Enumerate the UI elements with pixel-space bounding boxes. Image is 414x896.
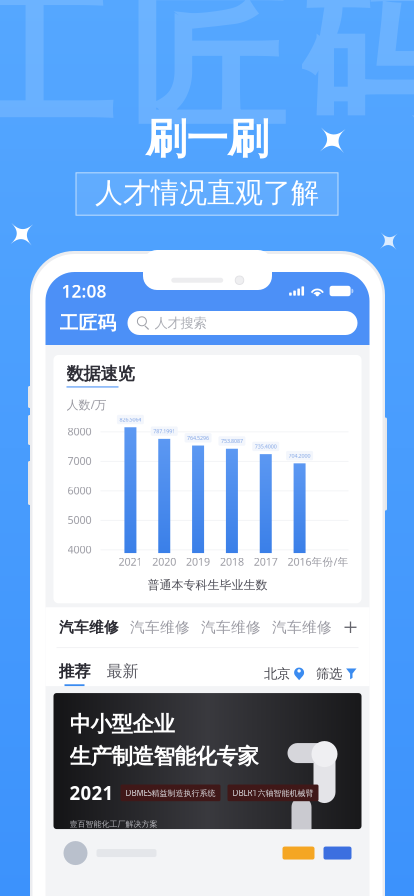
button[interactable]: 北京	[264, 666, 304, 686]
staticText: 匠	[128, 0, 285, 160]
staticText: 787.1991	[153, 428, 175, 435]
staticText: 753.8087	[221, 437, 243, 444]
staticText: 普通本专科生毕业生数	[147, 577, 267, 592]
staticText: 码	[299, 0, 414, 160]
staticText: 7000	[67, 454, 91, 468]
staticText: 工匠码	[59, 311, 116, 334]
staticText: 735.4000	[255, 443, 277, 450]
staticText: 2019	[186, 554, 210, 569]
staticText: 5000	[67, 513, 91, 527]
staticText: 12:08	[61, 279, 106, 302]
button[interactable]: 汽车维修	[266, 618, 337, 636]
staticText: 推荐	[58, 662, 90, 681]
button[interactable]: 汽车维修	[124, 618, 195, 636]
staticText: 工	[0, 0, 114, 160]
staticText: 筛选	[316, 666, 342, 682]
staticText: 刷一刷	[145, 114, 268, 164]
button[interactable]: 工匠码	[59, 311, 116, 334]
staticText: 6000	[67, 483, 91, 498]
staticText: 汽车维修	[59, 618, 119, 636]
staticText: 2016	[288, 554, 312, 569]
staticText: 人才搜索	[154, 315, 206, 331]
staticText: 826.5064	[119, 416, 141, 423]
staticText: 2018	[220, 554, 244, 569]
button[interactable]: 人才搜索	[127, 311, 357, 335]
staticText: 壹百智能化工厂解决方案	[69, 819, 157, 829]
staticText: 2020	[152, 554, 176, 569]
staticText: 生产制造智能化专家	[69, 743, 258, 769]
staticText: 中小型企业	[69, 711, 174, 737]
staticText: DBMES精益制造执行系统	[125, 787, 215, 798]
staticText: DBLR1六轴智能机械臂	[232, 787, 313, 798]
staticText: 8000	[67, 424, 91, 439]
button[interactable]: 汽车维修	[53, 618, 124, 636]
staticText: 人数/万	[66, 397, 106, 412]
staticText: 人才情况直观了解	[95, 176, 319, 210]
button[interactable]: Add category	[337, 621, 363, 633]
staticText: 汽车维修	[130, 618, 190, 636]
staticText: 数据速览	[66, 363, 134, 384]
staticText: 最新	[106, 661, 138, 681]
staticText: 4000	[67, 542, 91, 557]
staticText: 2021	[69, 780, 113, 805]
staticText: 年份/年	[311, 554, 348, 569]
button[interactable]: 汽车维修	[195, 618, 266, 636]
staticText: 704.2000	[289, 452, 311, 459]
staticText: 北京	[264, 666, 290, 682]
button[interactable]: 筛选	[304, 666, 356, 686]
staticText: 汽车维修	[201, 618, 261, 636]
staticText: 764.5296	[187, 434, 209, 441]
button[interactable]: 最新	[90, 661, 138, 686]
staticText: 汽车维修	[272, 618, 332, 636]
button[interactable]: 推荐	[58, 662, 90, 686]
staticText: 2017	[254, 554, 278, 569]
staticText: 2021	[118, 554, 142, 569]
